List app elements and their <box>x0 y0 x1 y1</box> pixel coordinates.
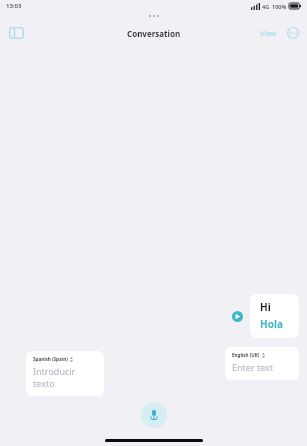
staticText: 13:03 <box>6 2 22 10</box>
button[interactable]: Play translation <box>230 309 245 324</box>
staticText: Hi <box>260 300 271 314</box>
button[interactable]: Record voice <box>141 402 167 428</box>
button[interactable]: Hi <box>250 294 299 338</box>
staticText: English (UK) <box>232 352 260 358</box>
button[interactable]: More options <box>285 25 301 41</box>
staticText: Hola <box>260 317 283 331</box>
staticText: Introducir texto <box>33 365 97 389</box>
staticText: Conversation <box>127 28 181 39</box>
staticText: 100% <box>272 3 287 10</box>
button[interactable]: English (UK) <box>225 347 299 380</box>
staticText: Enter text <box>232 361 274 373</box>
button[interactable]: Spanish (Spain) <box>26 351 104 396</box>
button[interactable]: Multitasking controls <box>143 13 165 19</box>
button[interactable]: View <box>258 25 279 41</box>
staticText: Spanish (Spain) <box>33 356 68 362</box>
staticText: 4G <box>262 3 270 10</box>
staticText: View <box>260 28 277 38</box>
button[interactable]: Toggle sidebar <box>6 24 27 42</box>
